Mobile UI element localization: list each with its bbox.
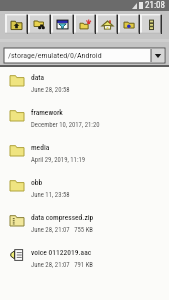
staticText: /storage/emulated/0/Android bbox=[8, 51, 102, 60]
staticText: December 10, 2017, 21:20 bbox=[31, 121, 100, 129]
button[interactable]: Menu bbox=[140, 14, 162, 34]
button[interactable]: New folder bbox=[74, 14, 96, 34]
button[interactable]: Home bbox=[96, 14, 118, 34]
button[interactable]: data bbox=[0, 67, 169, 102]
button[interactable]: Bookmarks bbox=[118, 14, 140, 34]
staticText: data bbox=[31, 73, 45, 82]
button[interactable]: Search bbox=[28, 14, 51, 34]
button[interactable]: voice 01122019.aac bbox=[0, 242, 169, 277]
staticText: obb bbox=[31, 178, 43, 187]
staticText: June 11, 23:58 bbox=[31, 191, 70, 199]
button[interactable]: Filter bbox=[51, 14, 74, 34]
button[interactable]: Up bbox=[5, 14, 28, 34]
button[interactable]: media bbox=[0, 137, 169, 172]
staticText: media bbox=[31, 143, 50, 152]
staticText: June 28, 21:07 791 KB bbox=[31, 261, 93, 269]
staticText: data compressed.zip bbox=[31, 213, 94, 222]
button[interactable]: obb bbox=[0, 172, 169, 207]
staticText: April 29, 2019, 11:19 bbox=[31, 156, 86, 164]
staticText: framework bbox=[31, 108, 63, 117]
staticText: June 28, 21:07 755 KB bbox=[31, 226, 93, 234]
button[interactable]: /storage/emulated/0/Android bbox=[4, 48, 165, 63]
staticText: 21:08 bbox=[145, 0, 165, 11]
button[interactable]: framework bbox=[0, 102, 169, 137]
staticText: June 28, 20:58 bbox=[31, 86, 70, 94]
button[interactable]: data compressed.zip bbox=[0, 207, 169, 242]
staticText: voice 01122019.aac bbox=[31, 248, 92, 257]
